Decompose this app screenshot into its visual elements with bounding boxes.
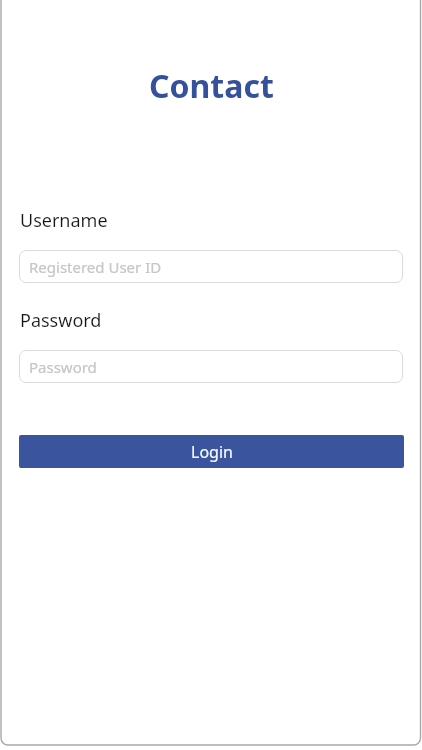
button[interactable]: Login — [19, 435, 404, 468]
staticText: Login — [191, 441, 233, 463]
button[interactable]: Password — [19, 350, 403, 383]
staticText: Username — [20, 208, 108, 233]
button[interactable]: Registered User ID — [19, 250, 403, 283]
staticText: Password — [20, 308, 102, 333]
staticText: Password — [29, 357, 97, 377]
staticText: Registered User ID — [29, 257, 162, 277]
staticText: Contact — [149, 64, 274, 108]
